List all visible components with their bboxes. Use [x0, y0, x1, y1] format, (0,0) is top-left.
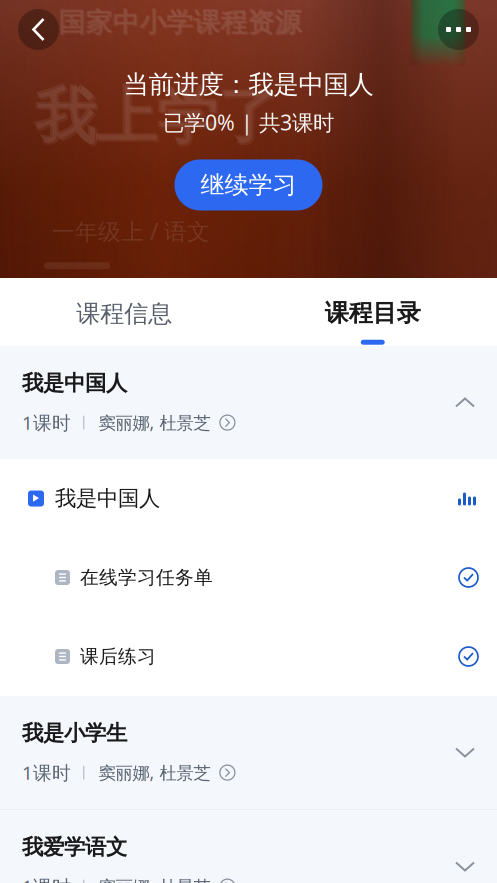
button[interactable]: 课程信息 — [0, 278, 248, 346]
staticText: 我上学了 — [36, 81, 280, 156]
staticText: 国家中小学课程资源 — [59, 7, 302, 40]
staticText: 窦丽娜, 杜景芝 — [98, 875, 210, 883]
staticText: 继续学习 — [200, 170, 296, 200]
staticText: 已学0% | 共3课时 — [163, 108, 334, 136]
staticText: 一年级上 / 语文 — [52, 216, 210, 246]
button[interactable]: 继续学习 — [174, 159, 322, 210]
staticText: 我爱学语文 — [22, 834, 127, 860]
staticText: 1课时 — [22, 410, 71, 435]
button[interactable]: 我是小学生 — [0, 696, 497, 809]
staticText: 我是小学生 — [22, 720, 127, 746]
button[interactable]: 返回 — [18, 9, 59, 50]
button[interactable]: 我爱学语文 — [0, 810, 497, 883]
button[interactable]: 更多 — [438, 9, 479, 50]
staticText: 窦丽娜, 杜景芝 — [98, 761, 210, 784]
staticText: 课后练习 — [80, 645, 156, 668]
button[interactable]: 我是中国人 — [0, 459, 497, 538]
staticText: 我是中国人 — [55, 485, 160, 512]
staticText: 当前进度：我是中国人 — [123, 69, 373, 100]
staticText: 课程目录 — [325, 298, 421, 328]
staticText: 课程信息 — [76, 299, 172, 328]
button[interactable]: 课程目录 — [248, 278, 497, 346]
staticText: 1课时 — [22, 760, 71, 785]
staticText: 窦丽娜, 杜景芝 — [98, 411, 210, 434]
staticText: 1课时 — [22, 874, 71, 883]
button[interactable]: 我是中国人 — [0, 346, 497, 459]
staticText: 我上学了 — [34, 79, 278, 154]
staticText: 国家中小学课程资源 — [58, 6, 301, 39]
staticText: 在线学习任务单 — [80, 566, 213, 589]
staticText: 我是中国人 — [22, 370, 127, 396]
button[interactable]: 课后练习 — [0, 617, 497, 696]
button[interactable]: 在线学习任务单 — [0, 538, 497, 617]
